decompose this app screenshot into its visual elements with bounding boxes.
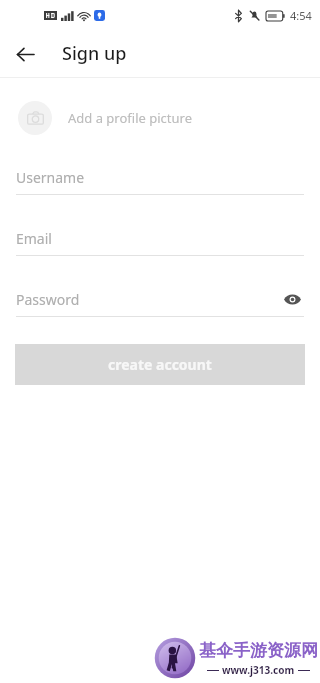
staticText: Username bbox=[16, 168, 85, 187]
staticText: Sign up bbox=[62, 41, 127, 66]
button[interactable]: create account bbox=[15, 344, 305, 385]
staticText: 基伞手游资源网 bbox=[199, 640, 318, 661]
button[interactable]: Add a profile picture bbox=[0, 98, 320, 138]
staticText: Add a profile picture bbox=[68, 109, 192, 127]
button[interactable]: Back bbox=[9, 38, 41, 70]
staticText: create account bbox=[108, 355, 212, 374]
staticText: Password bbox=[16, 290, 80, 309]
button[interactable]: Show password bbox=[280, 288, 304, 311]
button[interactable]: Email bbox=[0, 227, 320, 256]
staticText: www.j313.com bbox=[222, 663, 295, 677]
button[interactable]: Username bbox=[0, 166, 320, 195]
staticText: 4:54 bbox=[290, 8, 312, 23]
button[interactable]: Password bbox=[0, 288, 320, 317]
staticText: Email bbox=[16, 229, 52, 248]
